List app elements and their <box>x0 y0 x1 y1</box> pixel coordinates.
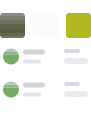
button[interactable] <box>0 73 91 106</box>
button[interactable]: Product <box>66 13 91 38</box>
button[interactable] <box>0 40 91 73</box>
button[interactable]: Garden photo <box>0 13 25 38</box>
